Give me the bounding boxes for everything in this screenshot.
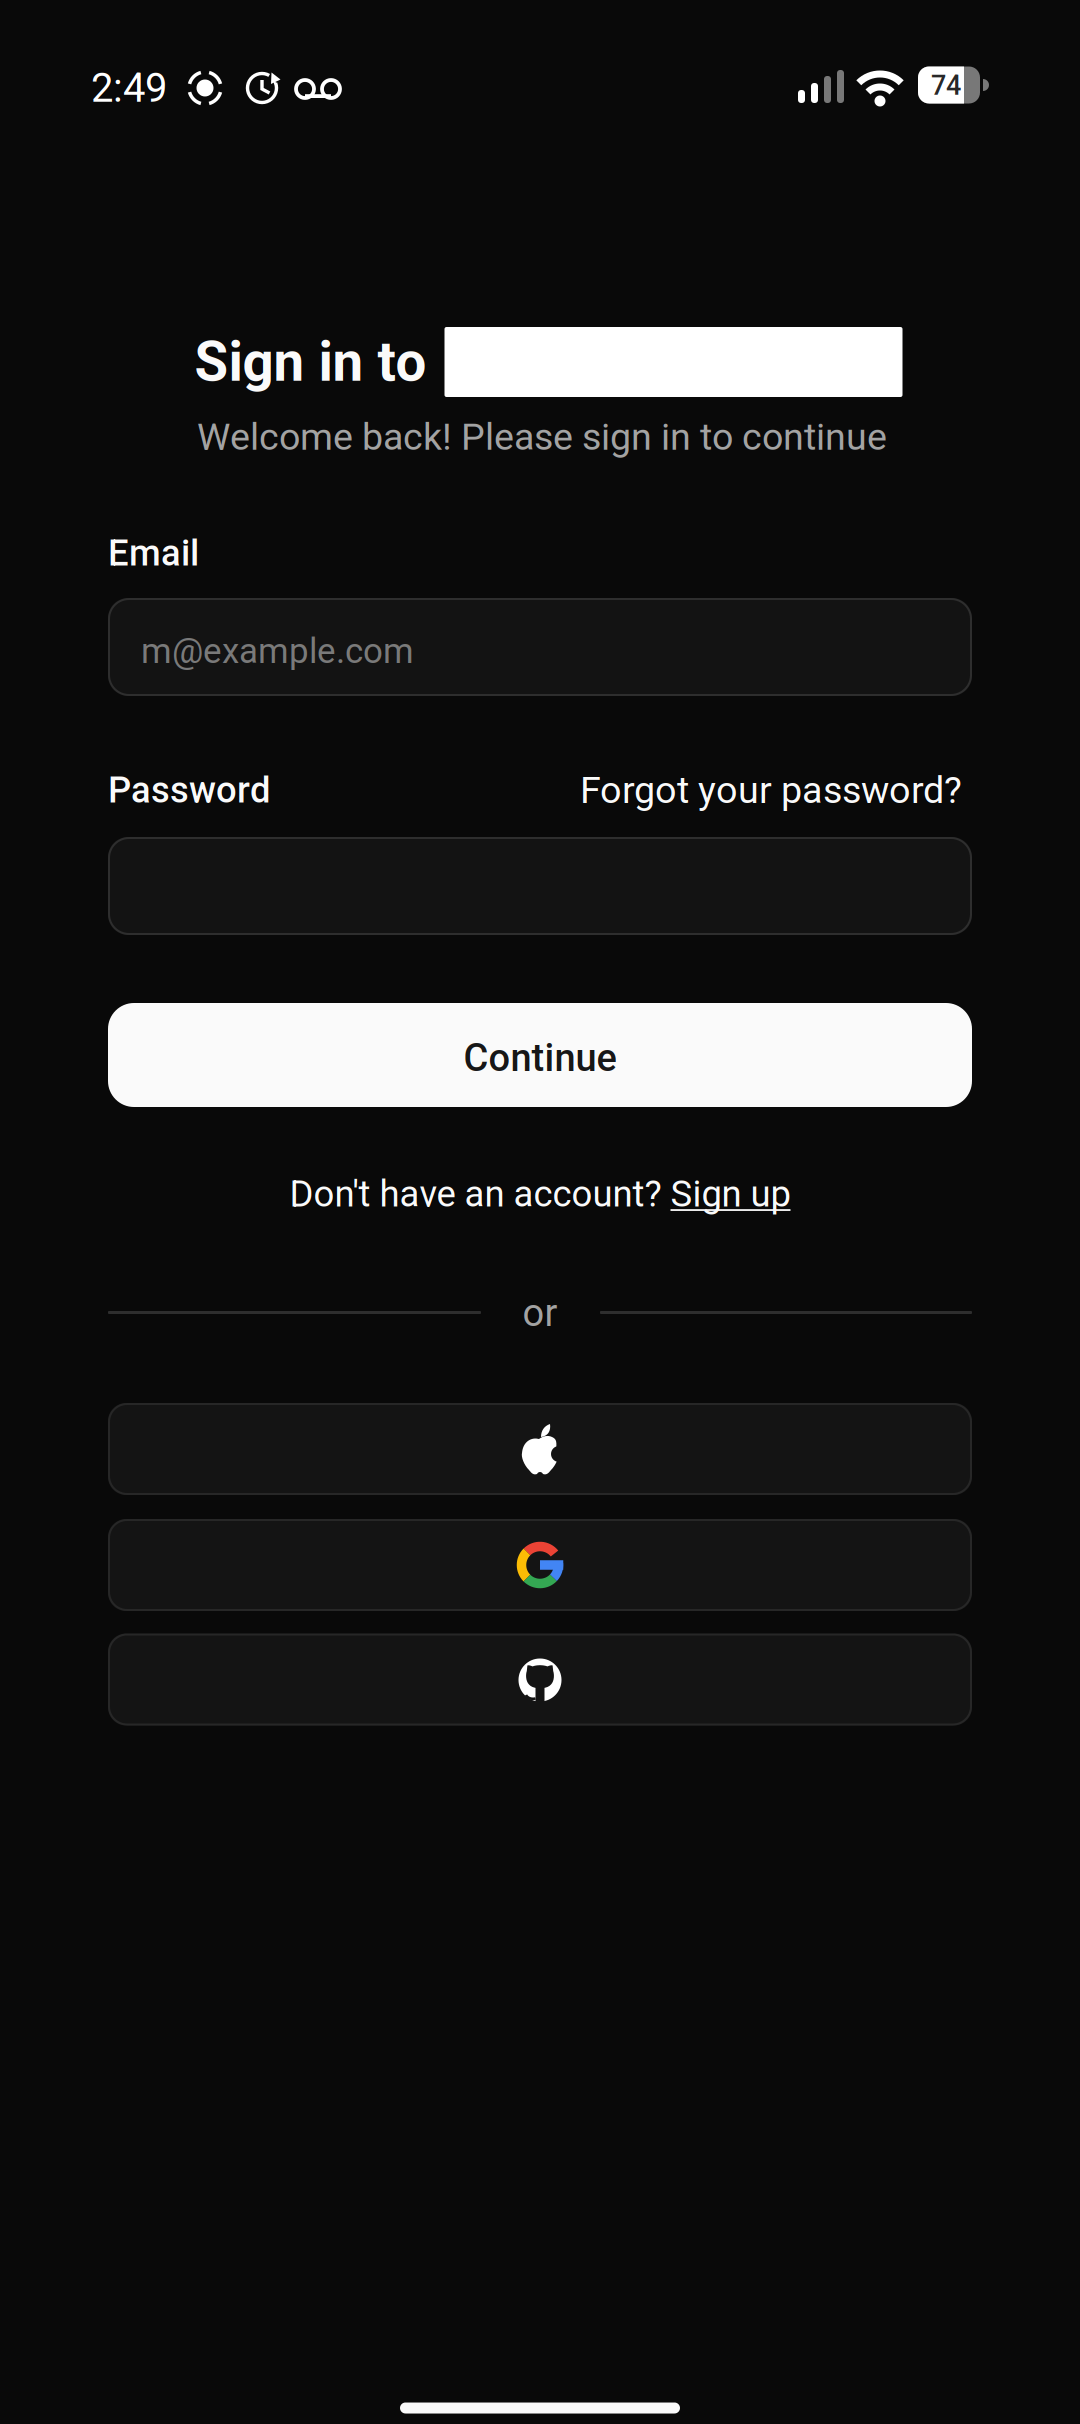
staticText: Email: [108, 532, 199, 574]
staticText: Welcome back! Please sign in to continue: [197, 415, 887, 459]
staticText: Sign in to: [194, 330, 426, 394]
staticText: Forgot your password?: [580, 768, 962, 812]
staticText: or: [522, 1291, 557, 1335]
staticText: 74: [931, 70, 961, 101]
staticText: Sign up: [670, 1173, 790, 1215]
staticText: Continue: [463, 1036, 616, 1080]
staticText: 2:49: [91, 65, 167, 111]
staticText: Don't have an account?: [289, 1173, 670, 1215]
staticText: m@example.com: [141, 631, 414, 671]
staticText: Password: [108, 769, 271, 811]
